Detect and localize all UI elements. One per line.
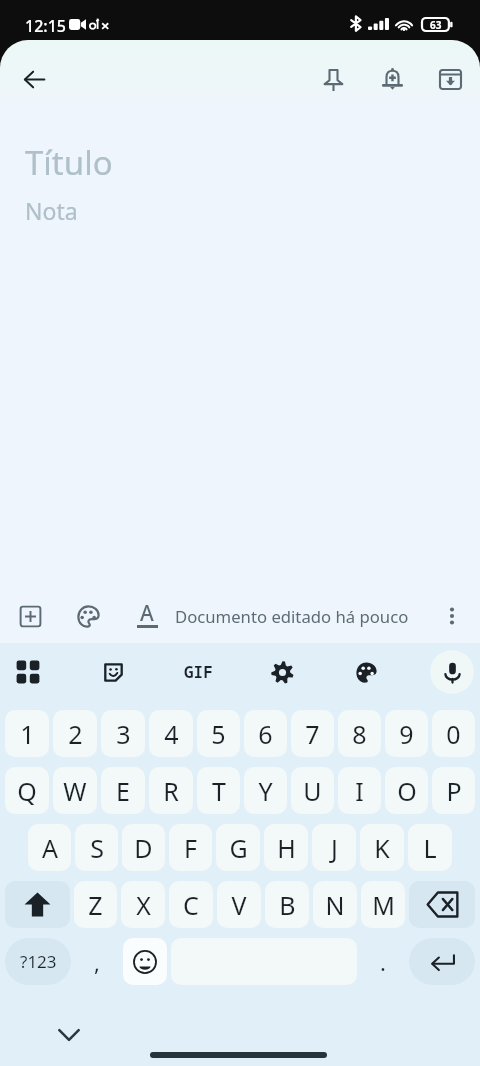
staticText: Y [258,774,273,808]
button[interactable]: Voice input [430,650,474,694]
button[interactable]: Enter [409,938,475,985]
button[interactable]: G [216,824,260,871]
button[interactable]: Z [74,881,117,928]
button[interactable]: W [53,767,97,814]
staticText: 1 [20,717,35,751]
button[interactable]: Back [12,57,56,101]
button[interactable]: N [313,881,357,928]
button[interactable]: T [197,767,240,814]
button[interactable]: R [149,767,193,814]
staticText: Z [88,888,103,922]
button[interactable]: X [121,881,165,928]
staticText: 63 [430,18,442,31]
button[interactable]: C [169,881,213,928]
button[interactable]: 2 [53,710,97,757]
staticText: 12:15 [25,15,66,37]
staticText: W [63,774,87,808]
staticText: N [325,888,345,922]
staticText: P [446,774,462,808]
button[interactable]: Toolbar [6,650,50,694]
button[interactable]: Pin note [311,57,355,101]
staticText: 8 [352,717,367,751]
button[interactable]: A [28,824,71,871]
button[interactable]: 3 [101,710,145,757]
button[interactable]: . [361,938,405,985]
button[interactable]: O [385,767,428,814]
staticText: Q [17,774,37,808]
button[interactable]: B [265,881,309,928]
button[interactable]: Stickers [91,650,135,694]
staticText: I [355,774,364,808]
button[interactable]: Emoji [123,938,167,985]
button[interactable]: Settings [260,650,304,694]
staticText: Título [25,140,113,185]
button[interactable]: 6 [244,710,287,757]
button[interactable]: Shift [5,881,70,928]
staticText: 4 [164,717,179,751]
staticText: J [331,831,338,865]
button[interactable]: P [432,767,475,814]
button[interactable]: Y [244,767,287,814]
staticText: 0 [446,717,461,751]
staticText: O [397,774,417,808]
button[interactable]: E [101,767,145,814]
staticText: X [136,888,151,922]
staticText: H [277,831,296,865]
button[interactable]: Add reminder [370,57,414,101]
button[interactable]: K [360,824,404,871]
button[interactable]: M [361,881,405,928]
staticText: GIF [184,661,213,683]
staticText: 5 [211,717,226,751]
staticText: 9 [399,717,414,751]
button[interactable]: Change colour [66,594,110,638]
button[interactable]: U [291,767,334,814]
staticText: K [374,831,390,865]
staticText: M [372,888,395,922]
button[interactable]: 4 [149,710,193,757]
staticText: S [90,831,104,865]
staticText: T [212,774,226,808]
button[interactable]: , [75,938,119,985]
staticText: U [303,774,322,808]
staticText: 6 [258,717,273,751]
staticText: A [140,599,154,628]
button[interactable]: 9 [385,710,428,757]
staticText: G [229,831,248,865]
staticText: B [279,888,296,922]
staticText: 3 [116,717,131,751]
staticText: F [184,831,197,865]
button[interactable]: 7 [291,710,334,757]
button[interactable]: 8 [338,710,381,757]
button[interactable]: Hide keyboard [52,1018,86,1052]
button[interactable]: 5 [197,710,240,757]
button[interactable]: More options [432,596,472,636]
button[interactable]: 1 [5,710,49,757]
staticText: . [380,947,386,977]
button[interactable]: GIF [176,650,220,694]
button[interactable]: V [217,881,261,928]
staticText: D [134,831,153,865]
button[interactable]: Backspace [409,881,475,928]
button[interactable]: Formatting [125,594,169,638]
button[interactable]: F [169,824,212,871]
button[interactable]: L [408,824,452,871]
staticText: R [163,774,179,808]
button[interactable]: Archive [428,57,472,101]
button[interactable]: 0 [432,710,475,757]
button[interactable]: I [338,767,381,814]
button[interactable]: D [122,824,165,871]
button[interactable]: ?123 [5,938,71,985]
staticText: V [231,888,247,922]
button[interactable]: Themes [344,650,388,694]
button[interactable]: S [75,824,118,871]
staticText: ?123 [20,950,57,973]
staticText: , [94,947,100,977]
button[interactable]: Add attachment [8,594,52,638]
staticText: Nota [25,195,78,226]
button[interactable]: Q [5,767,49,814]
button[interactable]: J [312,824,356,871]
staticText: E [116,774,130,808]
button[interactable]: H [264,824,308,871]
staticText: A [42,831,58,865]
